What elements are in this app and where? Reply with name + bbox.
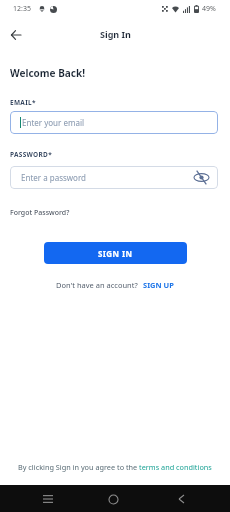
staticText: PASSWORD* <box>10 150 52 159</box>
staticText: Don't have an account? <box>56 280 138 290</box>
staticText: Enter a password <box>21 172 87 183</box>
button[interactable]: SIGN IN <box>44 242 187 264</box>
staticText: 49% <box>202 4 216 14</box>
button[interactable]: By clicking Sign in you agree to the ter… <box>18 462 212 472</box>
staticText: Welcome Back! <box>10 66 85 80</box>
staticText: Enter your email <box>22 117 85 128</box>
button[interactable]: Forgot Password? <box>10 208 70 218</box>
staticText: 12:35 <box>13 4 31 14</box>
button[interactable] <box>106 492 120 506</box>
button[interactable]: Enter a password <box>10 166 218 189</box>
staticText: SIGN IN <box>98 248 133 259</box>
button[interactable] <box>41 492 55 506</box>
button[interactable]: SIGN UP <box>143 280 174 290</box>
staticText: EMAIL* <box>10 98 36 107</box>
button[interactable] <box>174 492 188 506</box>
button[interactable] <box>6 25 26 45</box>
button[interactable]: Enter your email <box>10 111 218 134</box>
staticText: Sign In <box>100 28 131 40</box>
